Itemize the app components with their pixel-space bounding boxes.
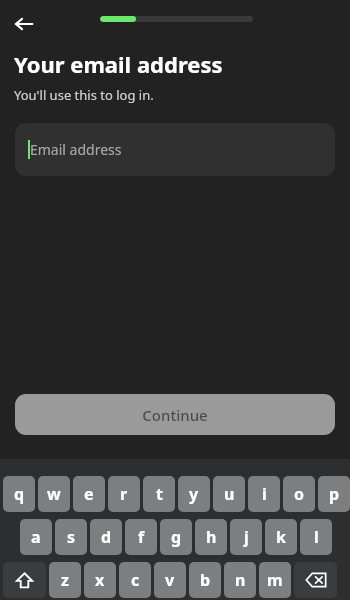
staticText: w — [47, 483, 61, 505]
button[interactable]: g — [160, 519, 192, 555]
staticText: p — [329, 483, 340, 505]
staticText: Your email address — [14, 49, 223, 79]
staticText: z — [61, 569, 69, 591]
button[interactable]: t — [143, 476, 175, 512]
button[interactable]: q — [3, 476, 35, 512]
staticText: n — [235, 569, 246, 591]
button[interactable]: z — [49, 562, 81, 598]
button[interactable]: a — [20, 519, 52, 555]
staticText: d — [101, 526, 112, 548]
staticText: y — [189, 483, 199, 505]
staticText: q — [14, 483, 25, 505]
staticText: v — [165, 569, 175, 591]
staticText: e — [84, 483, 94, 505]
staticText: j — [244, 526, 249, 548]
staticText: b — [200, 569, 211, 591]
button[interactable]: r — [108, 476, 140, 512]
button[interactable]: b — [189, 562, 221, 598]
button[interactable]: m — [259, 562, 291, 598]
staticText: o — [294, 483, 305, 505]
button[interactable]: u — [213, 476, 245, 512]
staticText: l — [314, 526, 319, 548]
button[interactable]: Back — [6, 6, 42, 42]
staticText: You'll use this to log in. — [14, 86, 154, 104]
staticText: h — [206, 526, 217, 548]
staticText: Continue — [142, 405, 208, 425]
staticText: a — [31, 526, 41, 548]
staticText: r — [120, 483, 128, 505]
staticText: t — [156, 483, 163, 505]
button[interactable]: w — [38, 476, 70, 512]
button[interactable]: k — [265, 519, 297, 555]
button[interactable]: Continue — [15, 394, 335, 435]
staticText: u — [224, 483, 235, 505]
staticText: k — [276, 526, 286, 548]
button[interactable]: Email address — [15, 123, 335, 176]
button[interactable]: n — [224, 562, 256, 598]
button[interactable]: j — [230, 519, 262, 555]
button[interactable]: l — [300, 519, 332, 555]
staticText: x — [95, 569, 105, 591]
staticText: c — [131, 569, 140, 591]
button[interactable]: e — [73, 476, 105, 512]
button[interactable]: f — [125, 519, 157, 555]
button[interactable]: s — [55, 519, 87, 555]
button[interactable]: v — [154, 562, 186, 598]
button[interactable]: Backspace — [294, 562, 337, 598]
staticText: Email address — [30, 140, 122, 159]
button[interactable]: Shift — [3, 562, 46, 598]
button[interactable]: p — [318, 476, 350, 512]
button[interactable]: x — [84, 562, 116, 598]
staticText: i — [262, 483, 267, 505]
staticText: s — [67, 526, 76, 548]
button[interactable]: o — [283, 476, 315, 512]
staticText: f — [138, 526, 145, 548]
button[interactable]: y — [178, 476, 210, 512]
button[interactable]: h — [195, 519, 227, 555]
staticText: m — [267, 569, 283, 591]
button[interactable]: c — [119, 562, 151, 598]
button[interactable]: i — [248, 476, 280, 512]
button[interactable]: d — [90, 519, 122, 555]
staticText: g — [171, 526, 182, 548]
